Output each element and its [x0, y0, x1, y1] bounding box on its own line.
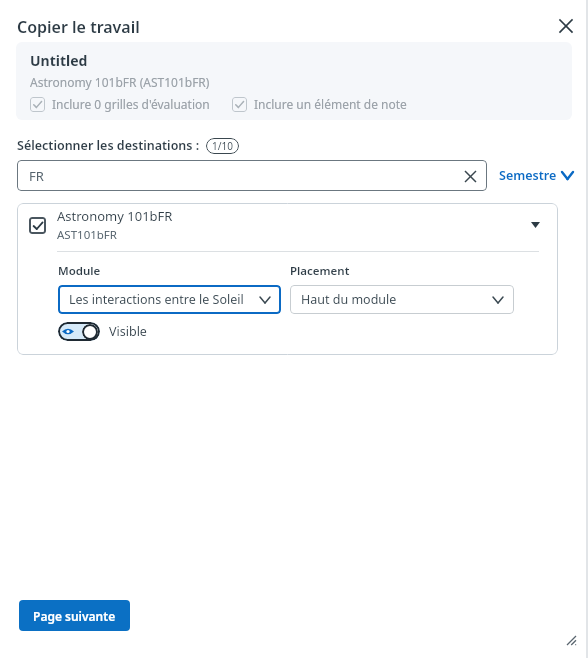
- button[interactable]: Développer: [522, 212, 548, 238]
- staticText: Page suivante: [33, 608, 116, 624]
- staticText: Astronomy 101bFR (AST101bFR): [30, 74, 210, 90]
- staticText: Module: [58, 263, 101, 279]
- staticText: 1/10: [212, 139, 233, 153]
- button[interactable]: Haut du module: [290, 285, 514, 314]
- staticText: Visible: [109, 323, 147, 340]
- staticText: Haut du module: [301, 291, 397, 308]
- staticText: Copier le travail: [17, 16, 140, 38]
- button[interactable]: Fermer: [552, 12, 580, 40]
- staticText: Astronomy 101bFR: [57, 207, 173, 225]
- button[interactable]: Visible: [58, 322, 147, 341]
- staticText: Placement: [290, 263, 350, 279]
- staticText: Sélectionner les destinations :: [17, 137, 200, 154]
- staticText: Untitled: [30, 51, 88, 70]
- staticText: FR: [29, 167, 44, 185]
- staticText: Inclure 0 grilles d'évaluation: [52, 96, 210, 112]
- button[interactable]: Les interactions entre le Soleil e: [58, 285, 281, 314]
- button[interactable]: Semestre: [499, 167, 573, 184]
- button[interactable]: Astronomy 101bFR: [17, 203, 558, 247]
- button[interactable]: Effacer la recherche: [459, 165, 481, 187]
- button[interactable]: Page suivante: [19, 600, 130, 631]
- staticText: AST101bFR: [57, 227, 117, 243]
- staticText: Inclure un élément de note: [254, 96, 407, 112]
- staticText: Semestre: [499, 167, 557, 184]
- button[interactable]: FR: [17, 160, 487, 191]
- staticText: Les interactions entre le Soleil e: [69, 291, 253, 308]
